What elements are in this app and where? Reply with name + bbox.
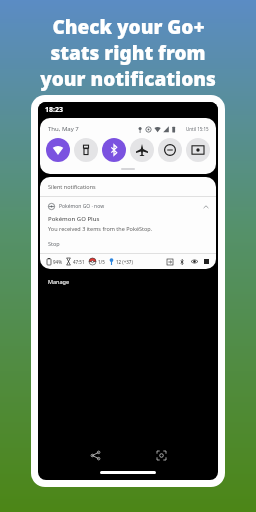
button[interactable]: Do not disturb bbox=[158, 138, 182, 162]
staticText: 12 (+37) bbox=[116, 259, 133, 265]
button[interactable]: Bluetooth bbox=[102, 138, 126, 162]
other: Visibility bbox=[191, 258, 198, 265]
button[interactable]: Stop bbox=[48, 240, 60, 247]
staticText: your notifications bbox=[40, 66, 216, 92]
staticText: Manage bbox=[48, 278, 70, 285]
staticText: Pokémon GO Plus bbox=[48, 215, 100, 223]
other: Bluetooth bbox=[179, 259, 185, 265]
button[interactable]: Airplane mode bbox=[130, 138, 154, 162]
staticText: Pokémon GO · now bbox=[59, 203, 105, 210]
button[interactable]: Manage bbox=[38, 273, 218, 289]
staticText: You received 3 items from the PokéStop. bbox=[48, 225, 153, 232]
staticText: Until 15:15 bbox=[186, 126, 209, 132]
button[interactable]: Screenshot bbox=[152, 446, 170, 464]
button[interactable]: Pokémon GO · now bbox=[40, 197, 216, 253]
button[interactable]: Cast bbox=[186, 138, 210, 162]
staticText: 1/5 bbox=[98, 259, 105, 265]
staticText: Silent notifications bbox=[48, 183, 96, 190]
staticText: 18:23 bbox=[45, 105, 63, 115]
button[interactable]: Share bbox=[86, 446, 104, 464]
other: Transfer bbox=[167, 259, 173, 265]
staticText: 94% bbox=[53, 259, 62, 265]
staticText: Stop bbox=[48, 240, 60, 247]
staticText: Check your Go+ bbox=[52, 14, 205, 40]
staticText: 47:51 bbox=[73, 259, 85, 265]
staticText: stats right from bbox=[50, 40, 206, 66]
staticText: Thu, May 7 bbox=[48, 125, 79, 133]
button[interactable]: Wi-Fi bbox=[46, 138, 70, 162]
button[interactable]: Flashlight bbox=[74, 138, 98, 162]
